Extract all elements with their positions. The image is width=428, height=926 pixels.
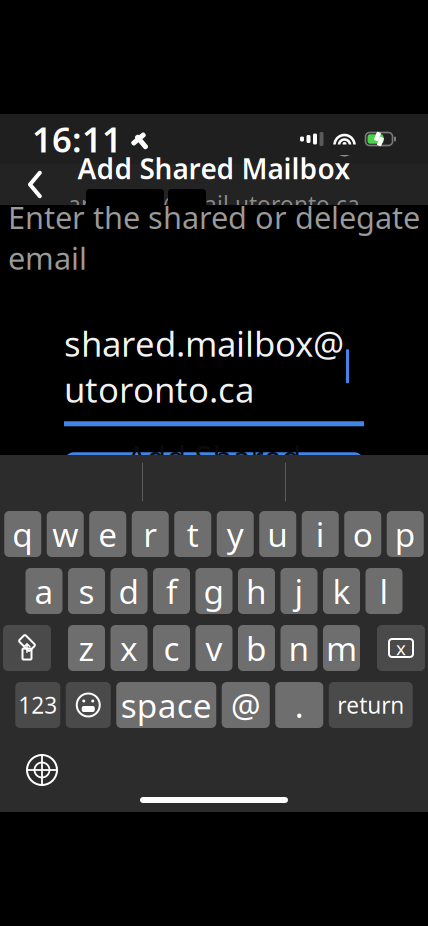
button[interactable]: j [280, 568, 317, 614]
button[interactable]: t [174, 511, 211, 557]
button[interactable]: i [302, 511, 339, 557]
staticText: o [353, 512, 373, 556]
staticText: 123 [18, 690, 57, 720]
button[interactable]: x [110, 625, 147, 671]
button[interactable]: Back [12, 161, 58, 207]
button[interactable]: Shift [3, 625, 51, 671]
staticText: x [120, 626, 138, 670]
staticText: v [205, 626, 222, 670]
button[interactable]: h [238, 568, 275, 614]
button[interactable]: d [110, 568, 147, 614]
button[interactable]: c [153, 625, 190, 671]
staticText: @ [231, 683, 261, 727]
staticText: n [288, 626, 309, 670]
button[interactable]: o [344, 511, 381, 557]
staticText: q [12, 512, 33, 556]
button[interactable]: . [275, 682, 323, 728]
button[interactable]: k [323, 568, 360, 614]
staticText: l [379, 569, 388, 613]
button[interactable]: @ [222, 682, 270, 728]
button[interactable]: q [4, 511, 41, 557]
staticText: m [326, 626, 357, 670]
staticText: Enter the shared or delegate email [8, 197, 420, 278]
staticText: c [163, 626, 179, 670]
staticText: t [187, 512, 199, 556]
staticText: g [203, 569, 224, 613]
button[interactable]: b [238, 625, 275, 671]
button[interactable]: a [25, 568, 62, 614]
staticText: b [246, 626, 267, 670]
staticText: h [246, 569, 267, 613]
staticText: r [143, 512, 157, 556]
button[interactable]: n [280, 625, 317, 671]
button[interactable]: z [68, 625, 105, 671]
staticText: space [121, 683, 212, 727]
staticText: k [332, 569, 350, 613]
staticText: d [118, 569, 139, 613]
staticText: i [316, 512, 325, 556]
button[interactable]: Emoji [66, 682, 111, 728]
staticText: shared.mailbox@utoronto.ca [64, 320, 344, 412]
staticText: w [52, 512, 78, 556]
button[interactable]: u [259, 511, 296, 557]
staticText: return [337, 690, 404, 720]
button[interactable]: e [89, 511, 126, 557]
button[interactable]: l [365, 568, 402, 614]
button[interactable]: f [153, 568, 190, 614]
button[interactable]: 123 [15, 682, 60, 728]
staticText: Add Shared Mailbox [77, 150, 350, 187]
staticText: 16:11 [32, 116, 122, 162]
button[interactable]: y [217, 511, 254, 557]
staticText: z [78, 626, 94, 670]
staticText: u [267, 512, 288, 556]
button[interactable]: Add Shared Mailbox [64, 452, 364, 505]
button[interactable]: w [47, 511, 84, 557]
button[interactable]: p [387, 511, 424, 557]
staticText: p [395, 512, 416, 556]
button[interactable]: Switch keyboard [20, 748, 64, 792]
staticText: . [295, 683, 304, 727]
staticText: e [98, 512, 117, 556]
button[interactable]: v [195, 625, 232, 671]
staticText: y [227, 512, 244, 556]
button[interactable]: space [116, 682, 216, 728]
staticText: s [78, 569, 94, 613]
staticText: a [34, 569, 53, 613]
staticText: x [396, 636, 406, 660]
button[interactable]: m [323, 625, 360, 671]
staticText: f [166, 569, 177, 613]
button[interactable]: g [195, 568, 232, 614]
staticText: amychl.li@mail.utoronto.ca [68, 189, 360, 219]
staticText: j [294, 569, 303, 613]
button[interactable]: Delete [377, 625, 425, 671]
button[interactable]: s [68, 568, 105, 614]
button[interactable]: return [329, 682, 413, 728]
button[interactable]: r [132, 511, 169, 557]
staticText: Add Shared Mailbox [126, 436, 301, 521]
